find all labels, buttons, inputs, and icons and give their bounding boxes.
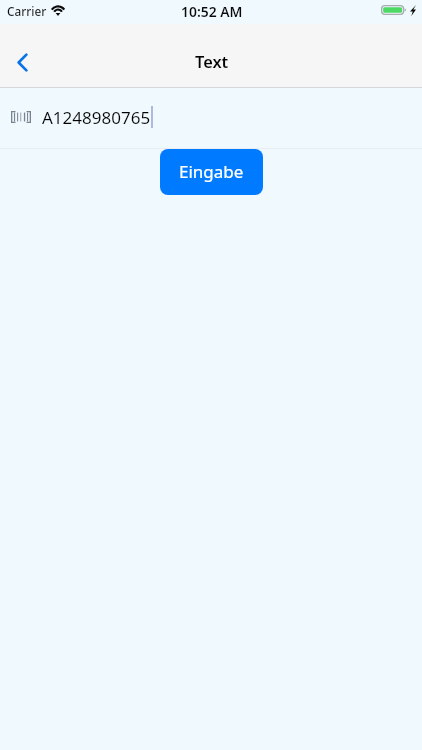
button[interactable]: Eingabe <box>160 149 263 195</box>
staticText: 10:52 AM <box>181 2 243 21</box>
button[interactable]: Back <box>2 40 42 85</box>
button[interactable]: A1248980765 <box>31 88 422 148</box>
staticText: Eingabe <box>179 160 244 183</box>
staticText: Text <box>195 50 229 72</box>
staticText: Carrier <box>7 3 47 19</box>
staticText: A1248980765 <box>42 106 151 129</box>
button[interactable]: Scan barcode <box>0 88 31 148</box>
